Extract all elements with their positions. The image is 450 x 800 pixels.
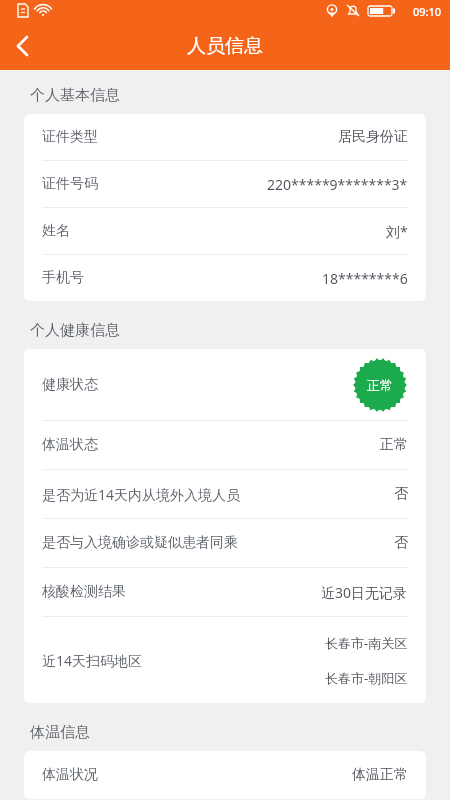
staticText: 正常 [380, 436, 408, 454]
staticText: 人员信息 [187, 34, 263, 58]
staticText: 刘* [386, 222, 408, 241]
staticText: 健康状态 [42, 376, 98, 394]
staticText: 核酸检测结果 [42, 583, 126, 601]
staticText: 居民身份证 [338, 128, 408, 146]
staticText: 09:10 [413, 4, 442, 19]
button[interactable]: Back [0, 22, 48, 70]
staticText: 长春市-朝阳区 [325, 669, 408, 687]
button[interactable]: 是否与入境确诊或疑似患者同乘 [24, 519, 426, 567]
button[interactable]: 手机号 [24, 255, 426, 301]
button[interactable]: 健康状态 [24, 349, 426, 420]
staticText: 否 [394, 534, 408, 552]
staticText: 个人基本信息 [30, 86, 120, 105]
staticText: 正常 [367, 377, 393, 393]
staticText: 个人健康信息 [30, 321, 120, 340]
staticText: 近14天扫码地区 [42, 651, 143, 670]
staticText: 证件号码 [42, 175, 98, 193]
button[interactable]: 体温状况 [24, 751, 426, 799]
staticText: 体温信息 [30, 723, 90, 742]
staticText: 近30日无记录 [321, 583, 408, 602]
staticText: 是否为近14天内从境外入境人员 [42, 485, 241, 504]
staticText: 18********6 [322, 269, 408, 288]
staticText: 220*****9*******3* [267, 175, 408, 194]
button[interactable]: 近14天扫码地区 [24, 617, 426, 703]
staticText: 姓名 [42, 222, 70, 240]
staticText: 是否与入境确诊或疑似患者同乘 [42, 534, 238, 552]
button[interactable]: 证件类型 [24, 114, 426, 160]
button[interactable]: 证件号码 [24, 161, 426, 207]
staticText: 体温正常 [352, 766, 408, 784]
button[interactable]: 是否为近14天内从境外入境人员 [24, 470, 426, 518]
staticText: 否 [394, 485, 408, 503]
staticText: 体温状况 [42, 766, 98, 784]
staticText: 长春市-南关区 [325, 634, 408, 652]
staticText: 证件类型 [42, 128, 98, 146]
button[interactable]: 姓名 [24, 208, 426, 254]
staticText: 手机号 [42, 269, 84, 287]
button[interactable]: 体温状态 [24, 421, 426, 469]
button[interactable]: 核酸检测结果 [24, 568, 426, 616]
staticText: 体温状态 [42, 436, 98, 454]
